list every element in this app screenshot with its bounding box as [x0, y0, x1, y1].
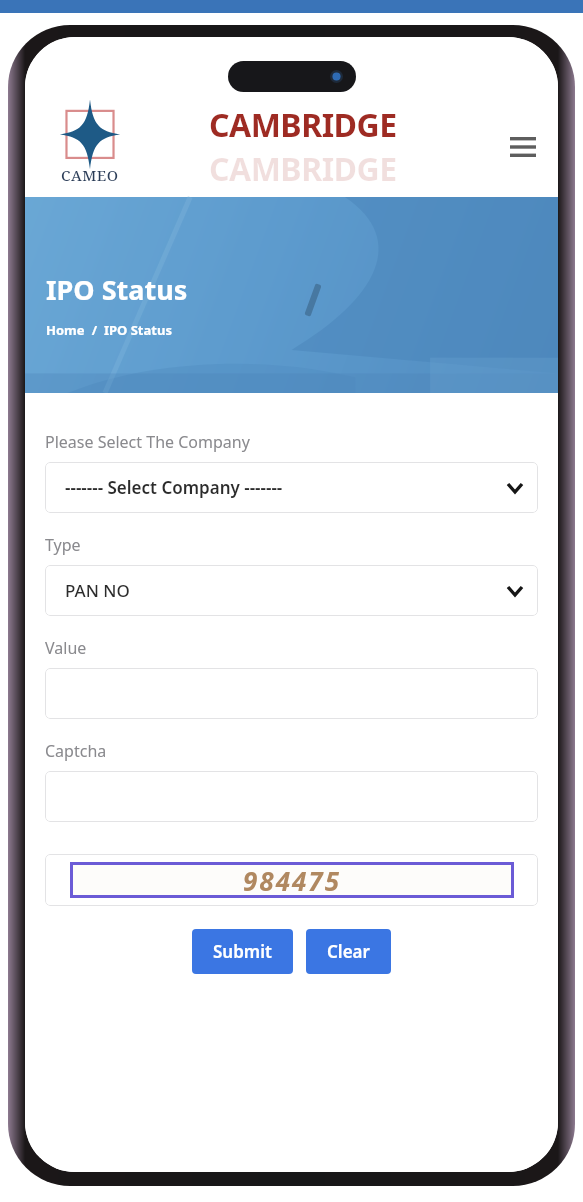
button[interactable]: Cambridge — [209, 103, 397, 191]
button[interactable] — [45, 668, 538, 719]
button[interactable]: Home — [46, 321, 85, 339]
button[interactable]: CAMEO home — [45, 105, 135, 189]
staticText: Please Select The Company — [45, 431, 250, 453]
staticText: CAMBRIDGE — [209, 147, 397, 191]
staticText: ------- Select Company ------- — [65, 476, 283, 499]
staticText: Captcha — [45, 740, 107, 762]
staticText: PAN NO — [65, 579, 130, 602]
button[interactable]: PAN NO — [45, 565, 538, 616]
staticText: 984475 — [243, 863, 341, 898]
staticText: Submit — [213, 940, 272, 963]
staticText: Type — [45, 534, 81, 556]
button[interactable] — [45, 771, 538, 822]
staticText: CAMBRIDGE — [209, 103, 397, 147]
button[interactable]: Menu — [502, 126, 544, 168]
button[interactable]: Clear — [306, 929, 391, 974]
button[interactable]: ------- Select Company ------- — [45, 462, 538, 513]
staticText: / IPO Status — [85, 321, 172, 339]
staticText: CAMEO — [61, 165, 119, 185]
staticText: IPO Status — [46, 271, 188, 308]
staticText: Value — [45, 637, 87, 659]
button[interactable]: Submit — [192, 929, 293, 974]
staticText: Clear — [327, 940, 370, 963]
staticText: Home — [46, 321, 85, 339]
